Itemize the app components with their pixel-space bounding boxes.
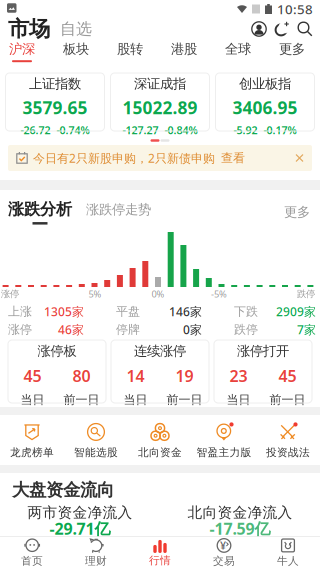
staticText: 涨停: [8, 322, 32, 337]
button[interactable]: ¥: [192, 537, 256, 568]
staticText: 龙虎榜单: [10, 446, 54, 459]
staticText: 涨跌停走势: [86, 201, 151, 218]
button[interactable]: 更多: [284, 204, 320, 220]
staticText: 前一日: [269, 392, 305, 407]
staticText: 2909家: [276, 303, 316, 319]
button[interactable]: -17.59亿: [160, 518, 320, 539]
button[interactable]: 牛人: [256, 537, 320, 568]
staticText: 大盘资金流向: [12, 479, 114, 501]
staticText: 15022.89: [122, 96, 197, 119]
staticText: 7家: [297, 321, 316, 337]
button[interactable]: 涨跌停走势: [72, 201, 151, 223]
staticText: 首页: [21, 554, 43, 567]
staticText: -5.92 -0.17%: [233, 123, 296, 137]
staticText: 前一日: [63, 392, 99, 407]
button[interactable]: 沪深: [9, 41, 35, 62]
staticText: 创业板指: [239, 76, 291, 92]
staticText: -127.27 -0.84%: [122, 123, 197, 137]
staticText: 沪深: [9, 41, 35, 57]
button[interactable]: 深证成指: [110, 73, 209, 131]
staticText: 板块: [63, 41, 89, 57]
button[interactable]: 创业板指: [215, 73, 314, 131]
button[interactable]: 板块: [63, 41, 89, 62]
button[interactable]: 关闭: [295, 153, 312, 162]
button[interactable]: 龙虎榜单: [0, 422, 64, 459]
button[interactable]: 搜索: [297, 21, 313, 37]
button[interactable]: 连续涨停: [111, 340, 209, 403]
staticText: 19: [175, 365, 193, 386]
staticText: 市场: [8, 16, 50, 42]
button[interactable]: 行情: [128, 537, 192, 568]
staticText: 1305家: [44, 303, 84, 319]
button[interactable]: 港股: [171, 41, 197, 62]
staticText: 上涨: [8, 304, 32, 319]
staticText: 10:58: [277, 0, 313, 18]
staticText: 北向资金净流入: [187, 503, 292, 521]
button[interactable]: 涨跌分析: [0, 199, 72, 225]
staticText: 股转: [117, 41, 143, 57]
button[interactable]: 今日有2只新股申购，2只新债申购: [8, 145, 312, 171]
button[interactable]: 智能选股: [64, 422, 128, 459]
button[interactable]: 投资战法: [256, 422, 320, 459]
staticText: 前一日: [166, 392, 202, 407]
button[interactable]: 更多: [279, 41, 305, 62]
staticText: 14: [126, 365, 144, 386]
button[interactable]: 账户: [251, 21, 267, 37]
staticText: 当日: [226, 392, 250, 407]
button[interactable]: 北向资金: [128, 422, 192, 459]
staticText: 深证成指: [134, 76, 186, 92]
staticText: 更多: [279, 41, 305, 57]
button[interactable]: 夜间模式: [274, 21, 290, 37]
staticText: 查看: [221, 151, 245, 165]
staticText: 146家: [169, 303, 202, 319]
staticText: 当日: [123, 392, 147, 407]
button[interactable]: -29.71亿: [0, 518, 160, 539]
staticText: 理财: [85, 554, 107, 567]
staticText: 投资战法: [266, 446, 310, 459]
staticText: -26.72 -0.74%: [20, 123, 89, 137]
staticText: -17.59亿: [209, 518, 270, 539]
staticText: 涨停板: [37, 343, 76, 359]
staticText: 上证指数: [29, 76, 81, 92]
button[interactable]: 全球: [225, 41, 251, 62]
staticText: 全球: [225, 41, 251, 57]
staticText: 北向资金: [138, 446, 182, 459]
staticText: 两市资金净流入: [27, 503, 132, 521]
staticText: 港股: [171, 41, 197, 57]
staticText: 智能选股: [74, 446, 118, 459]
staticText: 5%: [88, 288, 101, 300]
staticText: 46家: [58, 321, 84, 337]
button[interactable]: 上证指数: [5, 73, 104, 131]
button[interactable]: 涨停板: [8, 340, 106, 403]
staticText: 交易: [213, 554, 235, 567]
staticText: 0家: [183, 321, 202, 337]
staticText: 今日有2只新股申购，2只新债申购: [33, 150, 215, 166]
staticText: 涨停打开: [237, 343, 289, 359]
staticText: ¥: [220, 538, 226, 553]
staticText: 涨停: [1, 288, 19, 300]
staticText: 0%: [151, 288, 164, 300]
staticText: 连续涨停: [134, 343, 186, 359]
button[interactable]: 股转: [117, 41, 143, 62]
staticText: -5%: [211, 288, 227, 300]
staticText: 跌停: [234, 322, 258, 337]
staticText: 下跌: [234, 304, 258, 319]
staticText: 45: [23, 365, 41, 386]
staticText: 平盘: [116, 304, 140, 319]
staticText: 80: [72, 365, 90, 386]
button[interactable]: 理财: [64, 537, 128, 568]
staticText: 当日: [20, 392, 44, 407]
staticText: 更多: [284, 204, 310, 220]
staticText: 自选: [60, 19, 92, 39]
staticText: 行情: [149, 554, 171, 567]
staticText: 停牌: [116, 322, 140, 337]
button[interactable]: 涨停打开: [214, 340, 312, 403]
staticText: 45: [278, 365, 296, 386]
button[interactable]: 自选: [50, 19, 92, 39]
staticText: 牛人: [277, 554, 299, 567]
button[interactable]: 智盈主力版: [192, 422, 256, 459]
staticText: 跌停: [297, 288, 315, 300]
staticText: 3579.65: [22, 96, 87, 119]
button[interactable]: 首页: [0, 537, 64, 568]
staticText: 3406.95: [232, 96, 297, 119]
